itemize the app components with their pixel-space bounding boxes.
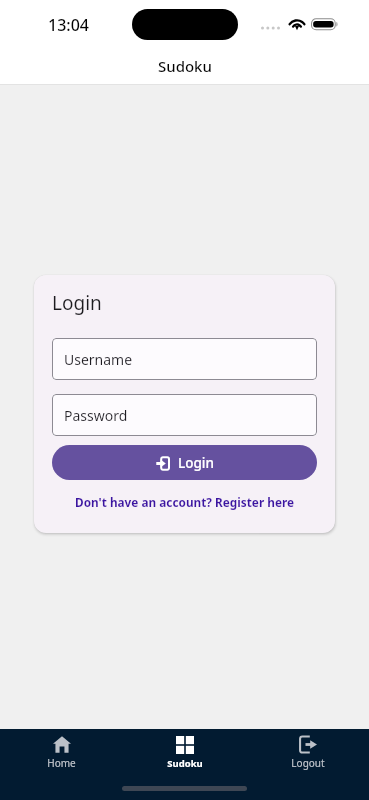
staticText: Username (64, 350, 133, 369)
button[interactable]: Username (52, 338, 317, 380)
staticText: Login (52, 290, 102, 316)
button[interactable]: Logout (246, 729, 369, 770)
button[interactable]: Login (52, 445, 317, 480)
staticText: Don't have an account? Register here (75, 494, 295, 510)
staticText: Password (64, 406, 128, 425)
button[interactable]: Password (52, 394, 317, 436)
staticText: Login (178, 454, 214, 472)
other: Sudoku (176, 736, 194, 754)
button[interactable]: Sudoku (123, 729, 246, 770)
other: Home (53, 736, 71, 753)
staticText: Logout (291, 756, 325, 770)
button[interactable]: Home (0, 729, 123, 770)
staticText: Sudoku (167, 757, 203, 770)
staticText: 13:04 (48, 14, 89, 36)
staticText: Home (47, 756, 76, 770)
other: Logout (299, 736, 317, 753)
button[interactable]: Don't have an account? Register here (52, 494, 317, 510)
staticText: Sudoku (158, 56, 212, 76)
